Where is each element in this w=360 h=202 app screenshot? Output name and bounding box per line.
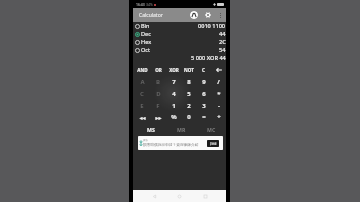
button[interactable]: 5 xyxy=(181,88,196,100)
button[interactable]: XOR xyxy=(166,64,181,76)
staticText: Hex xyxy=(141,38,152,46)
staticText: % xyxy=(171,113,177,121)
staticText: / xyxy=(217,78,220,86)
staticText: 詳情 xyxy=(210,142,217,146)
button[interactable]: D xyxy=(150,88,166,100)
staticText: 1 xyxy=(172,102,176,110)
staticText: B xyxy=(156,78,160,86)
staticText: ◂◂ xyxy=(139,114,146,121)
button[interactable]: OR xyxy=(150,64,166,76)
button[interactable]: 4 xyxy=(166,88,181,100)
staticText: ▸▸ xyxy=(155,114,162,121)
staticText: C xyxy=(140,90,144,98)
staticText: MR xyxy=(177,126,186,133)
staticText: = xyxy=(202,113,206,121)
staticText: Bin xyxy=(141,22,150,30)
button[interactable]: - xyxy=(211,100,226,112)
staticText: 7 xyxy=(172,78,176,86)
button[interactable]: Home xyxy=(175,192,184,201)
button[interactable]: AND xyxy=(134,64,150,76)
button[interactable]: = xyxy=(196,112,211,122)
button[interactable]: Account xyxy=(190,11,198,19)
button[interactable]: ◂◂ xyxy=(134,112,150,122)
staticText: 2 xyxy=(187,102,191,110)
button[interactable]: 0 xyxy=(181,112,196,122)
button[interactable]: MS xyxy=(135,124,166,134)
button[interactable]: Settings xyxy=(205,12,211,18)
button[interactable]: C xyxy=(196,64,211,76)
staticText: 2C xyxy=(219,38,226,46)
button[interactable]: Recents xyxy=(201,192,210,201)
button[interactable]: B xyxy=(150,76,166,88)
staticText: MS xyxy=(147,126,155,133)
button[interactable]: Back xyxy=(150,192,159,201)
staticText: 3 xyxy=(202,102,206,110)
staticText: F xyxy=(156,102,160,110)
staticText: 0010 1100 xyxy=(198,22,226,30)
staticText: 6 xyxy=(202,90,206,98)
staticText: 54 xyxy=(219,46,226,54)
staticText: NOT xyxy=(184,67,194,73)
button[interactable]: E xyxy=(134,100,150,112)
button[interactable]: Dec xyxy=(133,30,226,38)
staticText: 16:43 xyxy=(136,2,145,7)
staticText: AND xyxy=(137,67,148,73)
button[interactable]: 7 xyxy=(166,76,181,88)
button[interactable]: / xyxy=(211,76,226,88)
button[interactable]: 1 xyxy=(166,100,181,112)
button[interactable]: Bin xyxy=(133,22,226,30)
button[interactable]: ▸▸ xyxy=(150,112,166,122)
button[interactable]: 詳情 xyxy=(207,140,219,147)
button[interactable]: 8 xyxy=(181,76,196,88)
staticText: 廣告 xyxy=(143,139,148,142)
staticText: * xyxy=(217,90,221,98)
button[interactable]: C xyxy=(134,88,150,100)
button[interactable]: Hex xyxy=(133,38,226,46)
staticText: 0 xyxy=(187,113,191,121)
button[interactable]: 3 xyxy=(196,100,211,112)
button[interactable]: NOT xyxy=(181,64,196,76)
staticText: A xyxy=(140,78,145,86)
staticText: + xyxy=(217,113,221,121)
staticText: 5 xyxy=(187,90,191,98)
staticText: 損害賠償訴訟申請？資深律師介紹 xyxy=(143,142,199,147)
button[interactable]: + xyxy=(211,112,226,122)
staticText: Oct xyxy=(141,46,151,54)
staticText: 5 000 XOR 44 xyxy=(191,54,226,62)
staticText: 4 xyxy=(172,90,176,98)
staticText: 34% xyxy=(146,2,153,7)
staticText: 9 xyxy=(202,78,206,86)
button[interactable]: 2 xyxy=(181,100,196,112)
button[interactable]: MR xyxy=(166,124,196,134)
staticText: D xyxy=(156,90,161,98)
staticText: XOR xyxy=(169,67,179,73)
button[interactable]: 6 xyxy=(196,88,211,100)
staticText: 8 xyxy=(187,78,191,86)
button[interactable]: A xyxy=(134,76,150,88)
staticText: MC xyxy=(207,126,216,133)
staticText: Calculator xyxy=(139,12,163,19)
button[interactable]: * xyxy=(211,88,226,100)
staticText: 44 xyxy=(219,30,226,38)
staticText: E xyxy=(140,102,144,110)
button[interactable]: F xyxy=(150,100,166,112)
button[interactable]: Oct xyxy=(133,46,226,54)
button[interactable]: More options xyxy=(218,13,223,18)
button[interactable] xyxy=(211,64,226,76)
button[interactable]: % xyxy=(166,112,181,122)
button[interactable]: 9 xyxy=(196,76,211,88)
button[interactable]: 廣告 xyxy=(138,136,223,150)
button[interactable]: MC xyxy=(196,124,226,134)
staticText: OR xyxy=(155,67,162,73)
staticText: C xyxy=(202,67,205,73)
staticText: - xyxy=(218,102,220,110)
staticText: Dec xyxy=(141,30,151,38)
